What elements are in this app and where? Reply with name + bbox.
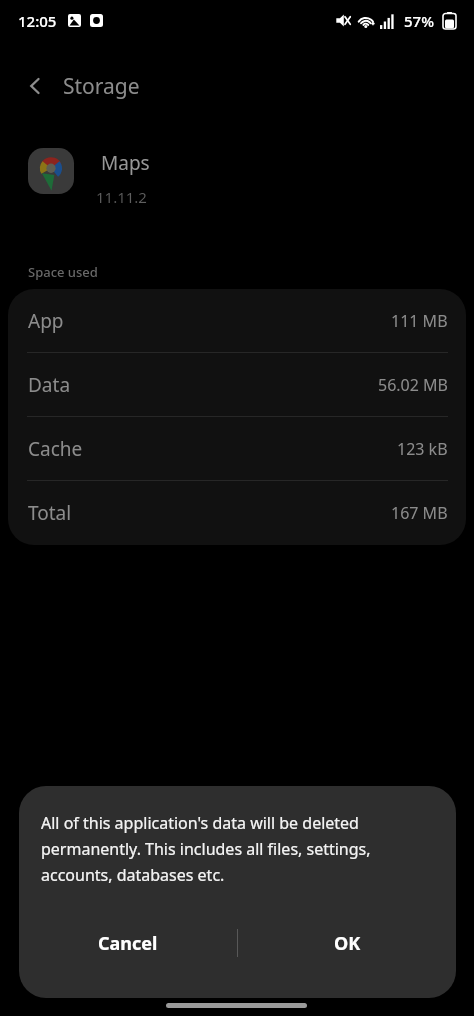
staticText: Storage bbox=[63, 72, 140, 101]
staticText: 12:05 bbox=[18, 11, 57, 31]
button[interactable]: Cache bbox=[8, 417, 466, 481]
button[interactable]: App bbox=[8, 289, 466, 353]
staticText: Data bbox=[28, 372, 71, 398]
staticText: Total bbox=[28, 500, 72, 526]
staticText: Space used bbox=[28, 263, 98, 281]
staticText: All of this application's data will be d… bbox=[41, 812, 440, 886]
staticText: 56.02 MB bbox=[378, 374, 448, 396]
button[interactable]: Back bbox=[14, 64, 150, 108]
button[interactable]: OK bbox=[238, 912, 456, 974]
button[interactable]: Total bbox=[8, 481, 466, 545]
other: Back bbox=[24, 75, 46, 97]
staticText: 11.11.2 bbox=[96, 187, 147, 207]
button[interactable]: Cancel bbox=[19, 912, 237, 974]
staticText: 111 MB bbox=[391, 310, 448, 332]
button[interactable]: Data bbox=[8, 353, 466, 417]
staticText: OK bbox=[334, 931, 361, 956]
staticText: 57% bbox=[404, 11, 434, 31]
staticText: 167 MB bbox=[391, 502, 448, 524]
staticText: 123 kB bbox=[397, 438, 448, 460]
staticText: App bbox=[28, 308, 64, 334]
staticText: Cancel bbox=[98, 931, 158, 956]
staticText: Maps bbox=[101, 150, 150, 176]
staticText: Cache bbox=[28, 436, 83, 462]
